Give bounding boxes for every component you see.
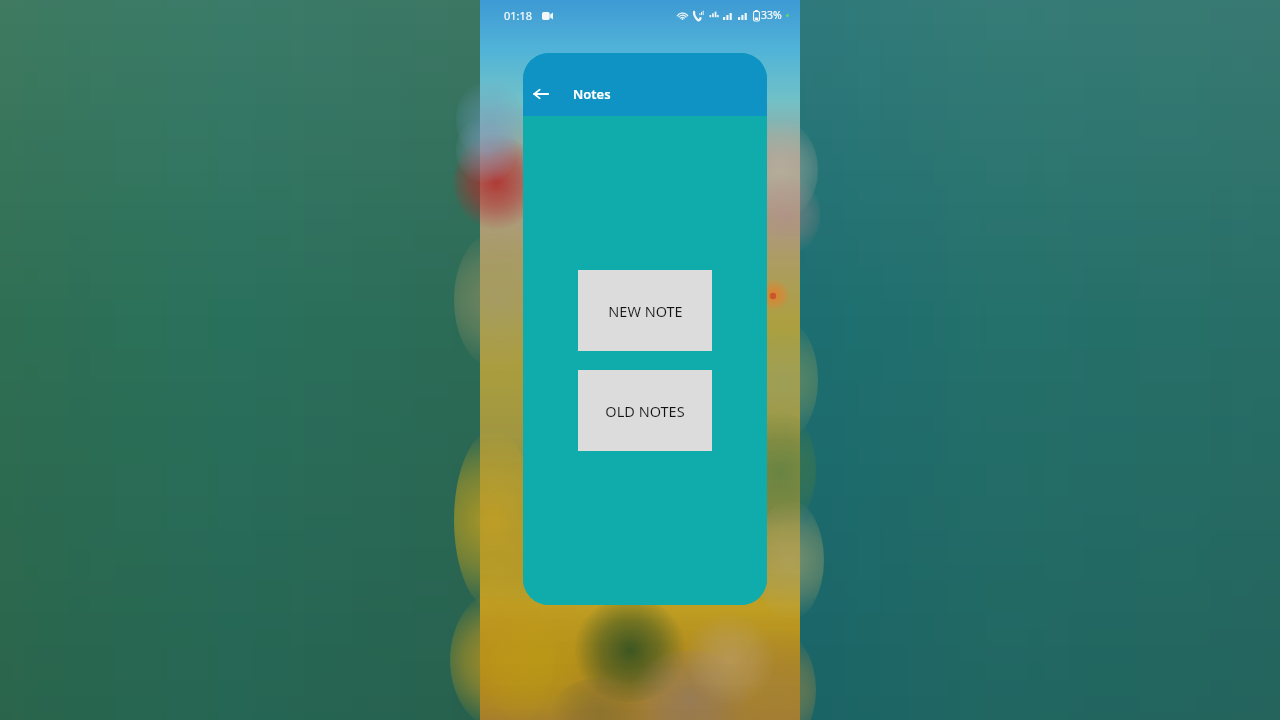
button[interactable]: Back [523, 76, 559, 112]
staticText: 33% [761, 8, 782, 22]
staticText: OLD NOTES [605, 401, 685, 421]
staticText: 01:18 [504, 8, 533, 23]
button[interactable]: NEW NOTE [578, 270, 712, 351]
staticText: Notes [573, 85, 611, 103]
button[interactable]: OLD NOTES [578, 370, 712, 451]
staticText: NEW NOTE [608, 301, 683, 321]
